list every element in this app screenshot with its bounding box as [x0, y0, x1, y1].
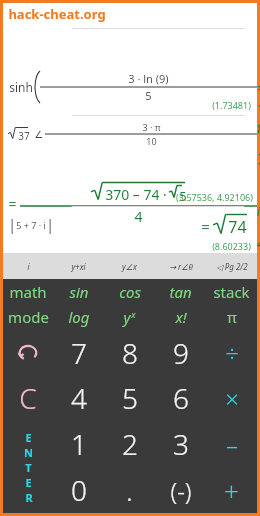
staticText: ÷	[225, 336, 239, 369]
staticText: .	[126, 473, 133, 508]
staticText: 8	[122, 334, 138, 372]
staticText: 10	[146, 135, 157, 147]
button[interactable]: C	[3, 375, 53, 421]
button[interactable]: –	[206, 421, 257, 467]
staticText: ∠	[30, 127, 45, 141]
button[interactable]: +	[206, 467, 257, 513]
staticText: (3.57536, 4.92106)	[176, 191, 253, 203]
button[interactable]: 0	[54, 467, 104, 513]
staticText: (-)	[170, 474, 192, 507]
staticText: ◁ Pg 2/2	[216, 261, 248, 272]
staticText: T	[25, 460, 32, 475]
staticText: y	[123, 307, 131, 327]
button[interactable]: ◁ Pg 2/2	[206, 253, 257, 279]
staticText: 6	[173, 379, 189, 417]
staticText: 5	[179, 187, 187, 205]
staticText: sinh	[9, 79, 33, 95]
staticText: stack	[213, 282, 250, 302]
button[interactable]: mode	[3, 304, 53, 330]
staticText: 370 – 74 ·	[105, 185, 167, 204]
button[interactable]: tan	[155, 279, 206, 304]
staticText: =	[8, 194, 17, 213]
staticText: 1	[71, 425, 87, 463]
staticText: y+xi	[71, 261, 86, 272]
staticText: 3 · π	[142, 121, 161, 133]
button[interactable]: 5	[104, 375, 155, 421]
button[interactable]: y	[104, 304, 155, 330]
staticText: =	[201, 216, 210, 236]
staticText: 3 · ln (9)	[128, 71, 169, 86]
staticText: |	[46, 215, 54, 234]
staticText: –	[226, 428, 238, 461]
button[interactable]: i	[3, 253, 53, 279]
staticText: 9	[173, 334, 189, 372]
staticText: sin	[69, 282, 89, 302]
button[interactable]: → r∠θ	[155, 253, 206, 279]
button[interactable]: 2	[104, 421, 155, 467]
staticText: 74	[228, 216, 247, 238]
staticText: mode	[8, 307, 49, 327]
button[interactable]: 3	[155, 421, 206, 467]
staticText: hack-cheat.org	[8, 5, 106, 23]
button[interactable]: .	[104, 467, 155, 513]
staticText: 2	[122, 425, 138, 463]
button[interactable]: Undo	[3, 330, 53, 375]
button[interactable]: cos	[104, 279, 155, 304]
staticText: x	[131, 308, 136, 320]
staticText: 7	[71, 334, 87, 372]
staticText: tan	[169, 282, 192, 302]
staticText: |	[8, 215, 16, 234]
staticText: 5	[122, 379, 138, 417]
staticText: log	[68, 307, 90, 327]
staticText: C	[19, 379, 37, 417]
staticText: R	[25, 490, 33, 505]
staticText: E	[25, 475, 32, 490]
staticText: +	[224, 473, 239, 508]
button[interactable]: 7	[53, 330, 104, 375]
button[interactable]: E	[3, 421, 54, 513]
staticText: → r∠θ	[169, 261, 193, 272]
staticText: 4	[71, 379, 87, 417]
staticText: cos	[119, 282, 141, 302]
button[interactable]: ×	[206, 375, 257, 421]
staticText: 4	[134, 207, 143, 226]
staticText: (8.60233)	[212, 240, 251, 252]
staticText: N	[24, 445, 33, 460]
staticText: π	[227, 307, 237, 327]
staticText: 37	[18, 129, 30, 143]
staticText: i	[27, 261, 30, 272]
staticText: x!	[175, 307, 187, 327]
button[interactable]: 4	[53, 375, 104, 421]
button[interactable]: math	[3, 279, 53, 304]
button[interactable]: 9	[155, 330, 206, 375]
staticText: 3	[173, 425, 189, 463]
button[interactable]: y+xi	[53, 253, 104, 279]
button[interactable]: 6	[155, 375, 206, 421]
staticText: (1.73481)	[212, 99, 251, 111]
button[interactable]: y∠x	[104, 253, 155, 279]
staticText: y∠x	[122, 261, 137, 272]
button[interactable]: sin	[53, 279, 104, 304]
button[interactable]: (-)	[155, 467, 206, 513]
staticText: E	[25, 430, 32, 445]
button[interactable]: ÷	[206, 330, 257, 375]
button[interactable]: stack	[206, 279, 257, 304]
staticText: ×	[225, 382, 239, 415]
staticText: 5	[145, 88, 152, 103]
button[interactable]: log	[53, 304, 104, 330]
button[interactable]: 8	[104, 330, 155, 375]
staticText: 5 + 7 · i	[16, 219, 46, 231]
button[interactable]: π	[206, 304, 257, 330]
button[interactable]: x!	[155, 304, 206, 330]
staticText: 0	[71, 471, 87, 509]
staticText: math	[9, 282, 47, 302]
button[interactable]: 1	[54, 421, 104, 467]
